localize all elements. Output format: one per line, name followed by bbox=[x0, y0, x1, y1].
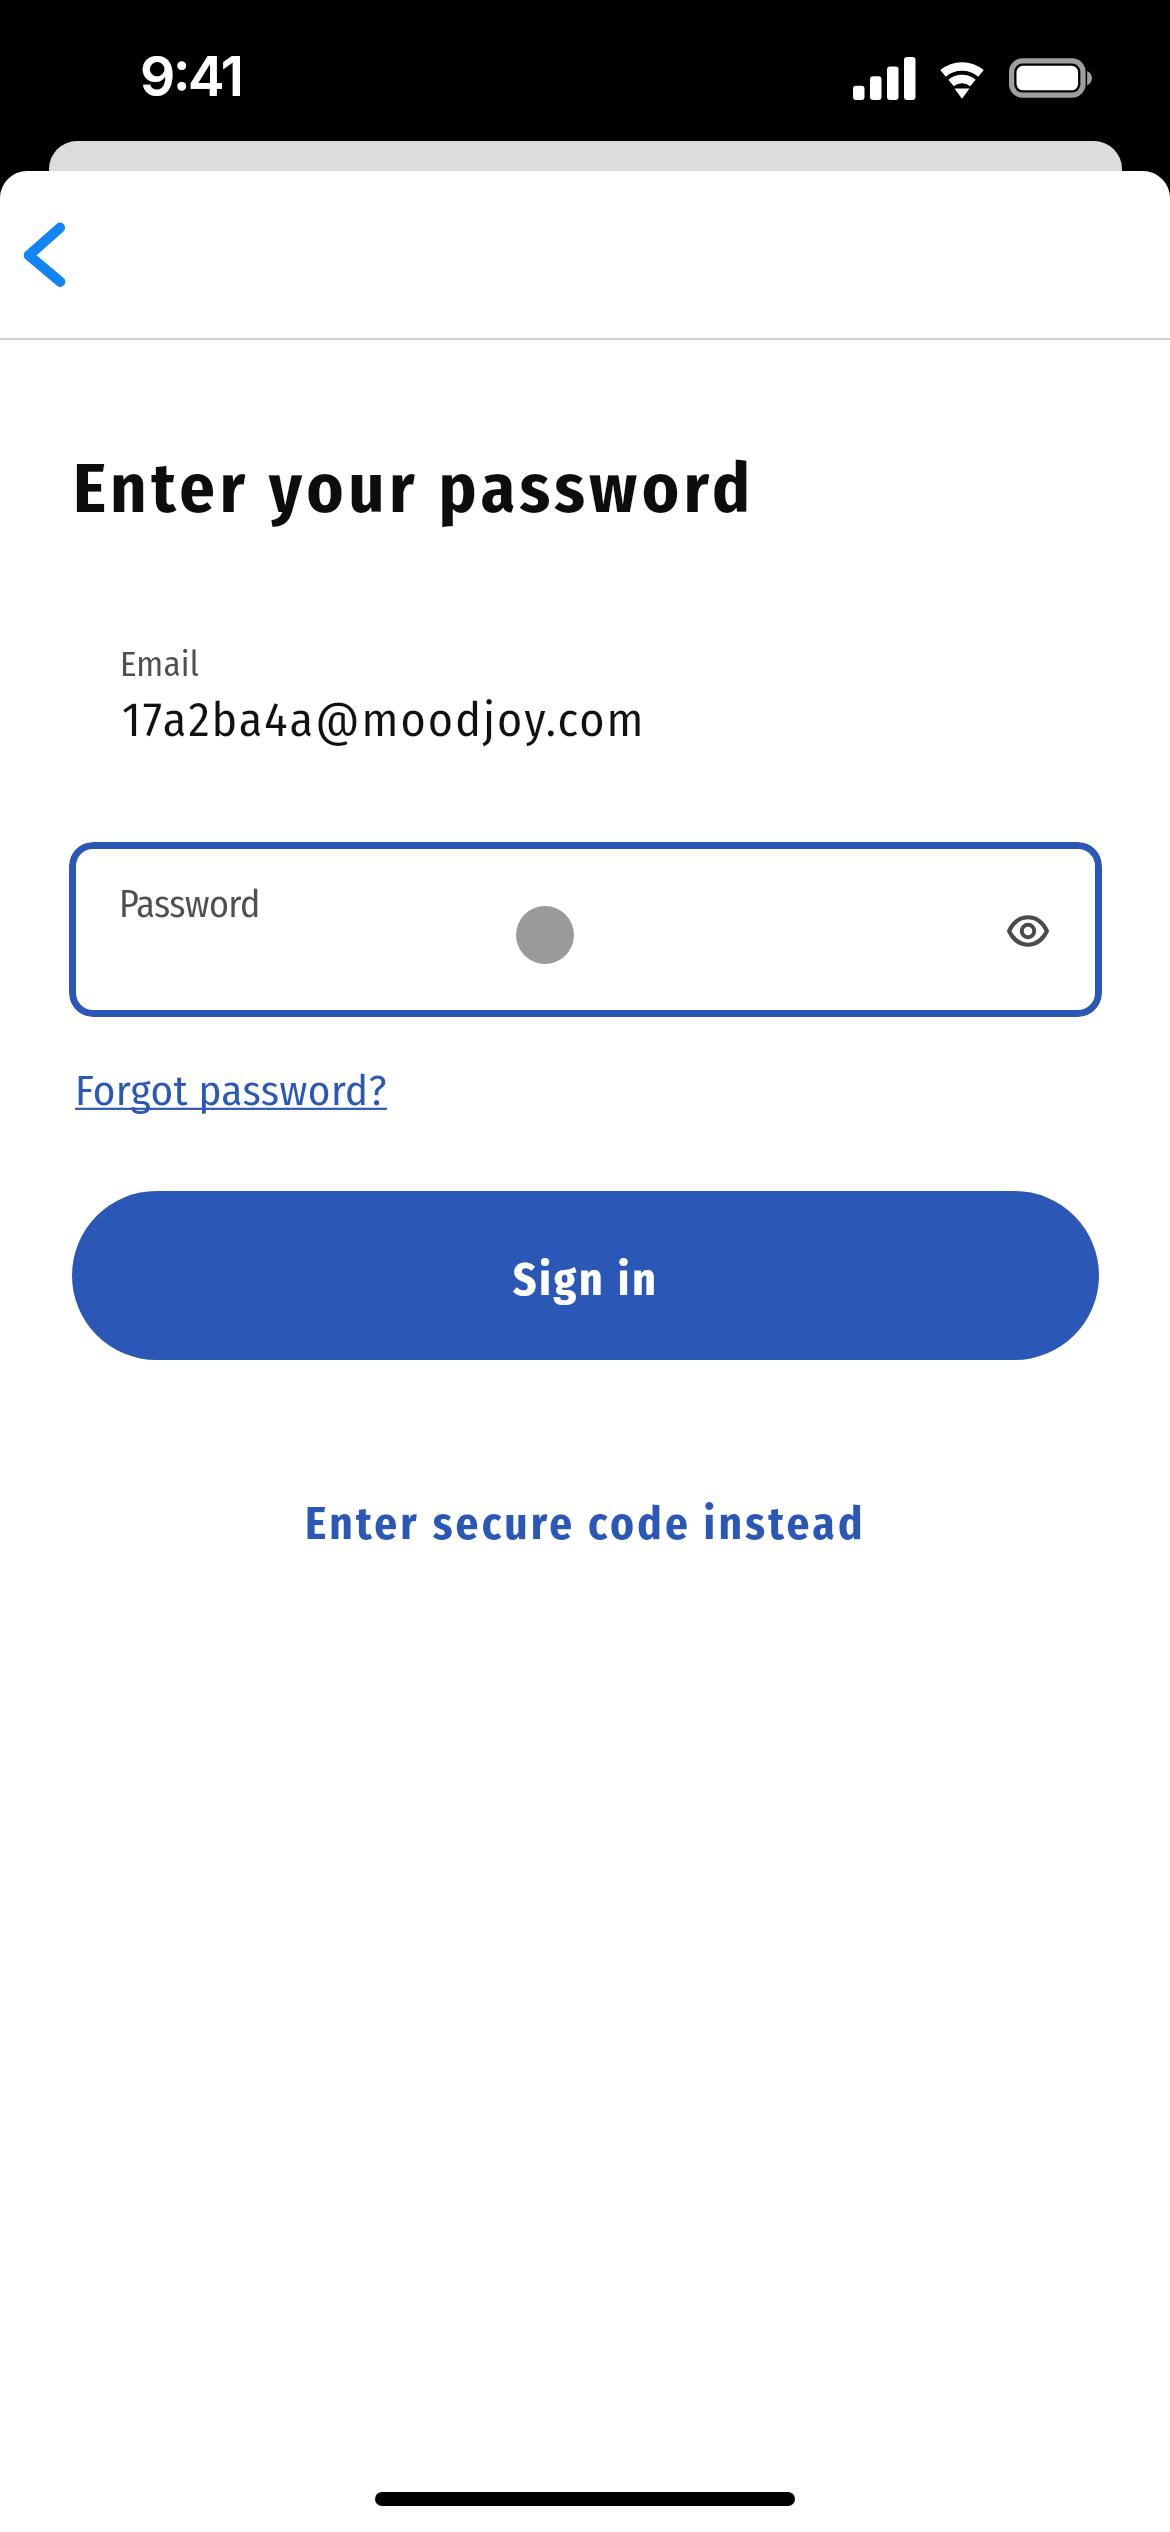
button[interactable]: Enter secure code instead bbox=[285, 1481, 886, 1567]
button[interactable]: Forgot password? bbox=[60, 1051, 403, 1131]
button[interactable]: Sign in bbox=[72, 1191, 1099, 1360]
staticText: Forgot password? bbox=[75, 1065, 388, 1117]
staticText: Password bbox=[119, 881, 260, 927]
staticText: Sign in bbox=[513, 1253, 659, 1307]
staticText: 9:41 bbox=[140, 43, 242, 110]
staticText: 17a2ba4a@moodjoy.com bbox=[122, 691, 646, 749]
staticText: Enter your password bbox=[73, 447, 755, 531]
button[interactable]: Password bbox=[69, 842, 1102, 1017]
button[interactable]: Back bbox=[0, 175, 94, 275]
staticText: Email bbox=[120, 643, 200, 685]
button[interactable]: Show password bbox=[981, 884, 1075, 978]
staticText: Enter secure code instead bbox=[305, 1497, 866, 1551]
